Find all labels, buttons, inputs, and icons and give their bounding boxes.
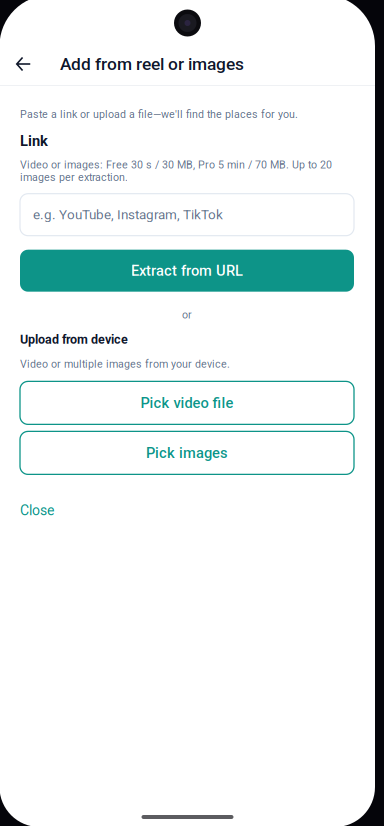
staticText: Upload from device — [20, 332, 128, 347]
button[interactable]: Close — [20, 500, 54, 520]
button[interactable]: Back — [0, 43, 47, 85]
staticText: Close — [20, 502, 54, 519]
staticText: Video or images: Free 30 s / 30 MB, Pro … — [20, 159, 332, 184]
staticText: Video or multiple images from your devic… — [20, 358, 230, 370]
staticText: Add from reel or images — [60, 54, 244, 74]
staticText: e.g. YouTube, Instagram, TikTok — [33, 207, 223, 223]
staticText: Link — [20, 132, 48, 150]
staticText: Paste a link or upload a file—we'll find… — [20, 108, 298, 120]
button[interactable]: Extract from URL — [20, 250, 354, 292]
staticText: Pick images — [146, 444, 228, 461]
button[interactable]: Pick images — [20, 431, 354, 474]
staticText: Extract from URL — [131, 262, 243, 279]
staticText: Pick video file — [140, 394, 233, 411]
button[interactable]: Pick video file — [20, 381, 354, 424]
staticText: or — [182, 309, 192, 321]
